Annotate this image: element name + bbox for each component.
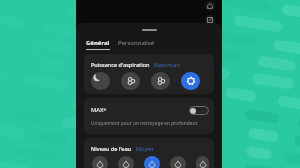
button[interactable]: Niveau 4 bbox=[170, 156, 186, 168]
button[interactable]: Niveau 1 bbox=[92, 156, 108, 168]
button[interactable]: Niveau 5 bbox=[196, 156, 209, 168]
staticText: Puissance d'aspiration bbox=[91, 61, 150, 68]
staticText: MAX+ bbox=[91, 106, 107, 114]
staticText: Niveau de l'eau bbox=[91, 145, 132, 152]
button[interactable]: Fort bbox=[151, 72, 170, 90]
staticText: Maximum bbox=[154, 61, 181, 68]
button[interactable]: Zones bbox=[205, 15, 215, 25]
button[interactable]: Silencieux bbox=[91, 72, 110, 90]
button[interactable]: Général bbox=[86, 39, 110, 50]
button[interactable]: Maximum bbox=[181, 72, 200, 90]
button[interactable]: Niveau 2 bbox=[118, 156, 134, 168]
staticText: Uniquement pour un nettoyage en profonde… bbox=[91, 120, 198, 127]
button[interactable]: Personnalisé bbox=[118, 39, 155, 47]
button[interactable]: Recharger bbox=[205, 1, 215, 11]
button[interactable]: Standard bbox=[121, 72, 140, 90]
button[interactable]: Puissance d'aspiration bbox=[84, 54, 214, 94]
button[interactable]: Activer MAX+ bbox=[189, 106, 209, 115]
button[interactable]: Niveau de l'eau bbox=[84, 138, 214, 168]
staticText: Général bbox=[86, 39, 110, 47]
staticText: Moyen bbox=[136, 145, 154, 152]
button[interactable]: MAX+ bbox=[84, 98, 214, 134]
button[interactable]: Niveau 3 bbox=[144, 156, 160, 168]
